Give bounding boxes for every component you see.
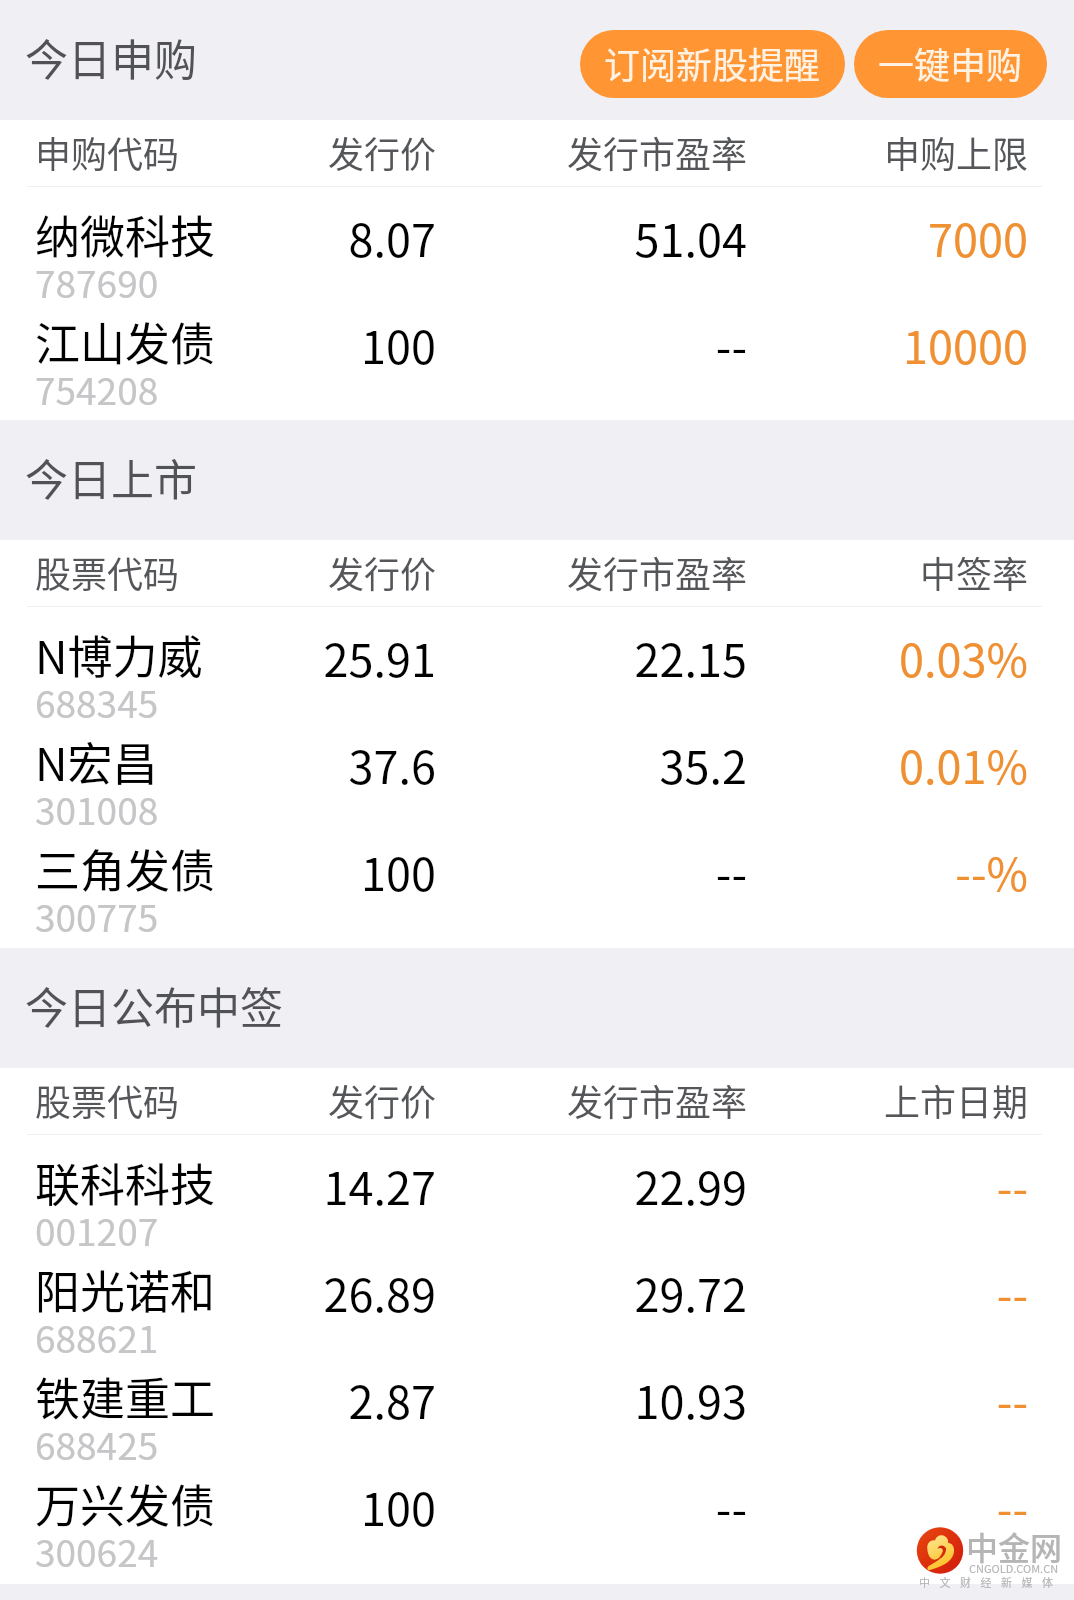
staticText: 51.04 <box>0 205 747 270</box>
staticText: 发行市盈率 <box>0 546 747 598</box>
staticText: 发行价 <box>0 1074 436 1126</box>
staticText: N宏昌 <box>35 729 158 794</box>
staticText: 100 <box>0 839 436 904</box>
button[interactable]: 万兴发债 <box>0 1456 1074 1563</box>
staticText: 申购上限 <box>0 126 1028 178</box>
staticText: -- <box>0 1474 747 1539</box>
staticText: 301008 <box>35 782 159 836</box>
staticText: 申购代码 <box>35 126 180 178</box>
staticText: 0.01% <box>0 732 1028 797</box>
staticText: -- <box>0 1474 1028 1539</box>
staticText: 发行市盈率 <box>0 126 747 178</box>
staticText: --% <box>0 839 1028 904</box>
button[interactable]: 铁建重工 <box>0 1349 1074 1456</box>
staticText: -- <box>0 312 747 377</box>
button[interactable]: N博力威 <box>0 607 1074 714</box>
button[interactable]: 江山发债 <box>0 294 1074 401</box>
staticText: 发行价 <box>0 126 436 178</box>
staticText: 787690 <box>35 255 159 309</box>
staticText: CNGOLD.COM.CN <box>969 1560 1059 1576</box>
staticText: 2.87 <box>0 1367 436 1432</box>
button[interactable]: 订阅新股提醒 <box>580 30 845 98</box>
staticText: 25.91 <box>0 625 436 690</box>
staticText: 阳光诺和 <box>35 1257 216 1322</box>
staticText: 发行价 <box>0 546 436 598</box>
staticText: -- <box>0 839 747 904</box>
staticText: 上市日期 <box>0 1074 1028 1126</box>
button[interactable]: 联科科技 <box>0 1135 1074 1242</box>
staticText: 26.89 <box>0 1260 436 1325</box>
staticText: 37.6 <box>0 732 436 797</box>
staticText: 688345 <box>35 675 159 729</box>
staticText: -- <box>0 1260 1028 1325</box>
button[interactable]: 一键申购 <box>854 30 1047 98</box>
button[interactable]: N宏昌 <box>0 714 1074 821</box>
staticText: 001207 <box>35 1203 159 1257</box>
staticText: 中金网 <box>966 1523 1063 1569</box>
staticText: 300775 <box>35 889 159 943</box>
button[interactable]: 三角发债 <box>0 821 1074 928</box>
staticText: 股票代码 <box>35 546 180 598</box>
staticText: 中文财经新媒体 <box>919 1574 1063 1590</box>
staticText: 发行市盈率 <box>0 1074 747 1126</box>
staticText: 铁建重工 <box>35 1364 216 1429</box>
staticText: 10000 <box>0 312 1028 377</box>
staticText: 股票代码 <box>35 1074 180 1126</box>
staticText: 今日申购 <box>25 26 197 88</box>
staticText: -- <box>0 1367 1028 1432</box>
staticText: N博力威 <box>35 622 203 687</box>
staticText: 35.2 <box>0 732 747 797</box>
staticText: 688425 <box>35 1417 159 1471</box>
staticText: 江山发债 <box>35 309 216 374</box>
staticText: 8.07 <box>0 205 436 270</box>
button[interactable]: 阳光诺和 <box>0 1242 1074 1349</box>
staticText: 今日上市 <box>25 446 197 508</box>
staticText: 100 <box>0 312 436 377</box>
staticText: 订阅新股提醒 <box>604 37 821 89</box>
staticText: 7000 <box>0 205 1028 270</box>
staticText: 22.99 <box>0 1153 747 1218</box>
staticText: 今日公布中签 <box>25 974 283 1036</box>
staticText: 纳微科技 <box>35 202 216 267</box>
staticText: 22.15 <box>0 625 747 690</box>
staticText: 万兴发债 <box>35 1471 216 1536</box>
staticText: 一键申购 <box>878 37 1023 89</box>
staticText: 14.27 <box>0 1153 436 1218</box>
staticText: 100 <box>0 1474 436 1539</box>
staticText: 0.03% <box>0 625 1028 690</box>
staticText: 中签率 <box>0 546 1028 598</box>
staticText: 688621 <box>35 1310 159 1364</box>
staticText: -- <box>0 1153 1028 1218</box>
staticText: 29.72 <box>0 1260 747 1325</box>
staticText: 754208 <box>35 362 159 416</box>
button[interactable]: 纳微科技 <box>0 187 1074 294</box>
staticText: 联科科技 <box>35 1150 216 1215</box>
staticText: 10.93 <box>0 1367 747 1432</box>
staticText: 300624 <box>35 1524 159 1578</box>
staticText: 三角发债 <box>35 836 216 901</box>
